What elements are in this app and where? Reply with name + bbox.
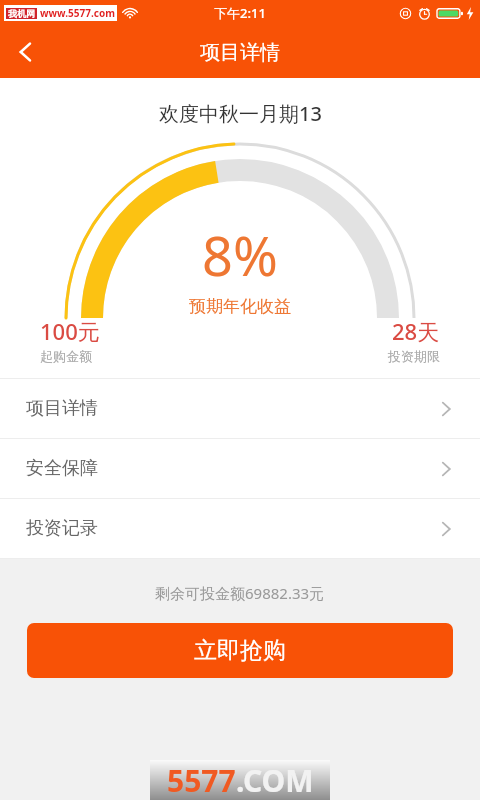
staticText: 预期年化收益 [189,296,291,317]
staticText: 8% [202,218,278,292]
button[interactable]: 立即抢购 [27,623,453,678]
staticText: .COM [236,760,314,800]
button[interactable]: Back [0,26,52,78]
staticText: 起购金额 [40,348,92,364]
staticText: 下午2:11 [214,4,266,22]
staticText: 欢度中秋一月期13 [159,100,322,127]
staticText: 28天 [392,316,440,346]
button[interactable]: 投资记录 [0,499,480,558]
staticText: 投资记录 [26,517,98,540]
staticText: 剩余可投金额69882.33元 [155,583,325,603]
staticText: 投资期限 [388,348,440,364]
staticText: 立即抢购 [194,636,286,665]
button[interactable]: 安全保障 [0,439,480,498]
staticText: 我机网 [8,8,35,19]
staticText: 100元 [40,316,100,346]
staticText: 安全保障 [26,457,98,480]
staticText: 项目详情 [200,40,280,65]
button[interactable]: 项目详情 [0,379,480,438]
staticText: 5577 [167,760,236,800]
staticText: 项目详情 [26,397,98,420]
staticText: www.5577.com [40,6,115,20]
